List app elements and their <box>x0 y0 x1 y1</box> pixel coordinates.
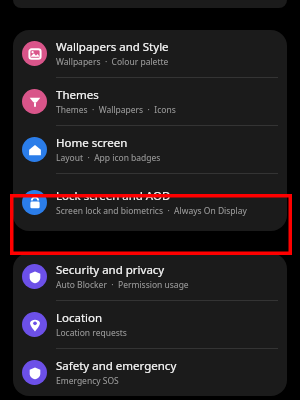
button[interactable]: Wallpapers and Style <box>13 30 287 77</box>
staticText: Safety and emergency <box>56 358 177 374</box>
staticText: Wallpapers and Style <box>56 39 169 55</box>
button[interactable]: Home screen <box>13 126 287 173</box>
staticText: Screen lock and biometrics · Always On D… <box>56 205 247 217</box>
staticText: Location requests <box>56 327 127 339</box>
staticText: Lock screen and AOD <box>56 188 171 204</box>
staticText: Wallpapers · Colour palette <box>56 56 169 68</box>
button[interactable]: Location <box>13 301 287 348</box>
staticText: Themes <box>56 87 99 103</box>
button[interactable]: Security and privacy <box>13 253 287 300</box>
button[interactable]: Themes <box>13 78 287 125</box>
staticText: Security and privacy <box>56 262 165 278</box>
button[interactable]: Safety and emergency <box>13 349 287 396</box>
staticText: Home screen <box>56 135 128 151</box>
staticText: Auto Blocker · Permission usage <box>56 279 189 291</box>
staticText: Location <box>56 310 103 326</box>
button[interactable]: Lock screen and AOD <box>13 174 287 231</box>
staticText: Themes · Wallpapers · Icons <box>56 104 176 116</box>
staticText: Layout · App icon badges <box>56 152 161 164</box>
staticText: Emergency SOS <box>56 375 119 387</box>
